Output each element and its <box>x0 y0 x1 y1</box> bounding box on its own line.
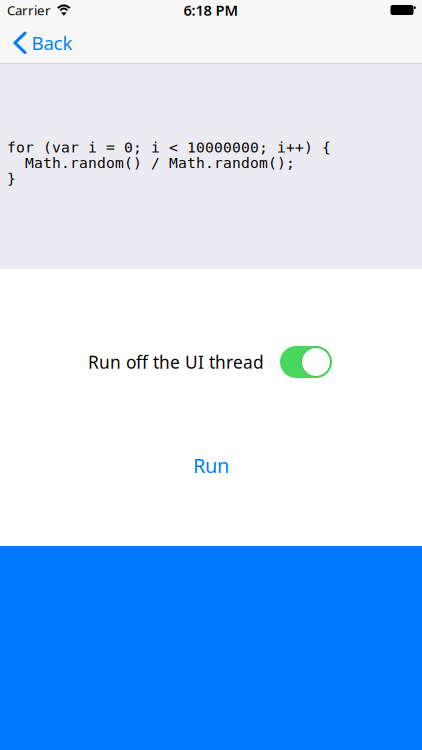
button[interactable]: Back <box>0 20 81 63</box>
staticText: Back <box>32 30 73 55</box>
staticText: 6:18 PM <box>183 0 238 20</box>
staticText: } <box>7 170 16 187</box>
button[interactable]: Run <box>177 444 245 487</box>
button[interactable]: Run off the UI thread <box>280 346 332 378</box>
staticText: for (var i = 0; i < 10000000; i++) { <box>7 139 331 156</box>
staticText: Run <box>193 452 229 479</box>
staticText: Carrier <box>7 1 51 19</box>
staticText: Run off the UI thread <box>88 350 264 373</box>
staticText: Math.random() / Math.random(); <box>7 155 295 171</box>
